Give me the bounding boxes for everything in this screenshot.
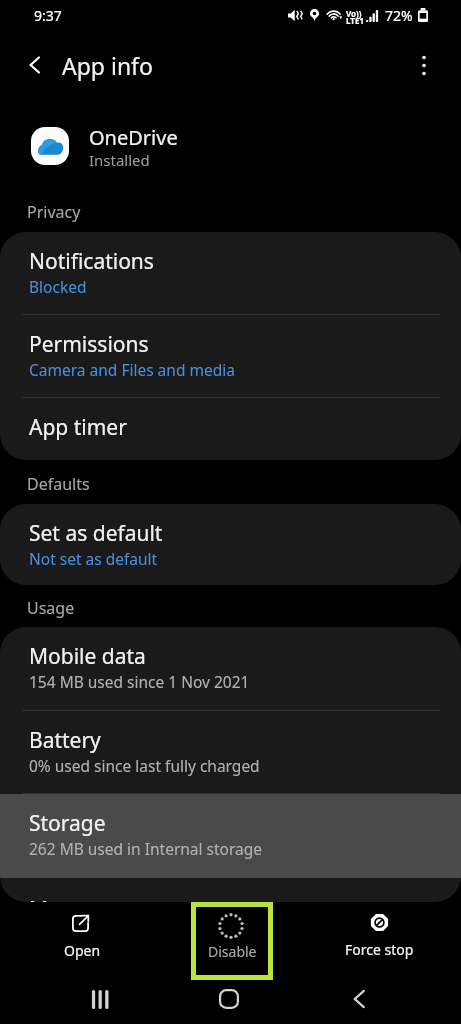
- staticText: Notifications: [29, 247, 154, 276]
- staticText: Installed: [89, 150, 150, 170]
- button[interactable]: Home: [207, 977, 251, 1021]
- staticText: Privacy: [27, 201, 81, 223]
- button[interactable]: Set as default: [0, 504, 461, 585]
- staticText: Not set as default: [29, 548, 158, 569]
- staticText: LTE1: [346, 15, 364, 26]
- staticText: Camera and Files and media: [29, 359, 235, 380]
- button[interactable]: Battery: [0, 711, 461, 794]
- button[interactable]: Open: [42, 905, 122, 977]
- staticText: Battery: [29, 726, 101, 755]
- button[interactable]: Storage: [0, 794, 461, 878]
- button[interactable]: Manage space: [0, 878, 461, 902]
- staticText: Set as default: [29, 519, 163, 548]
- staticText: Blocked: [29, 276, 87, 297]
- button[interactable]: Recent apps: [78, 977, 122, 1021]
- staticText: 154 MB used since 1 Nov 2021: [29, 671, 250, 692]
- staticText: Defaults: [27, 473, 90, 495]
- staticText: 0% used since last fully charged: [29, 755, 260, 776]
- staticText: App info: [62, 50, 153, 81]
- button[interactable]: Force stop: [340, 905, 420, 977]
- button[interactable]: Back: [337, 977, 381, 1021]
- staticText: Permissions: [29, 330, 149, 359]
- staticText: Disable: [208, 942, 257, 961]
- staticText: Storage: [29, 809, 106, 838]
- button[interactable]: Navigate up: [13, 43, 57, 87]
- button[interactable]: Permissions: [0, 315, 461, 398]
- staticText: Manage space: [29, 895, 172, 902]
- staticText: Usage: [27, 597, 75, 619]
- button[interactable]: Notifications: [0, 232, 461, 315]
- button[interactable]: Disable: [196, 907, 268, 975]
- button[interactable]: More options: [402, 43, 446, 87]
- staticText: Force stop: [345, 940, 414, 959]
- staticText: OneDrive: [89, 124, 178, 151]
- staticText: 9:37: [34, 6, 62, 25]
- staticText: App timer: [29, 413, 127, 442]
- staticText: 72%: [385, 6, 413, 25]
- staticText: Open: [64, 941, 101, 960]
- button[interactable]: App timer: [0, 398, 461, 460]
- staticText: Mobile data: [29, 642, 146, 671]
- button[interactable]: Mobile data: [0, 627, 461, 711]
- staticText: 262 MB used in Internal storage: [29, 838, 263, 859]
- staticText: Vo)): [346, 8, 362, 19]
